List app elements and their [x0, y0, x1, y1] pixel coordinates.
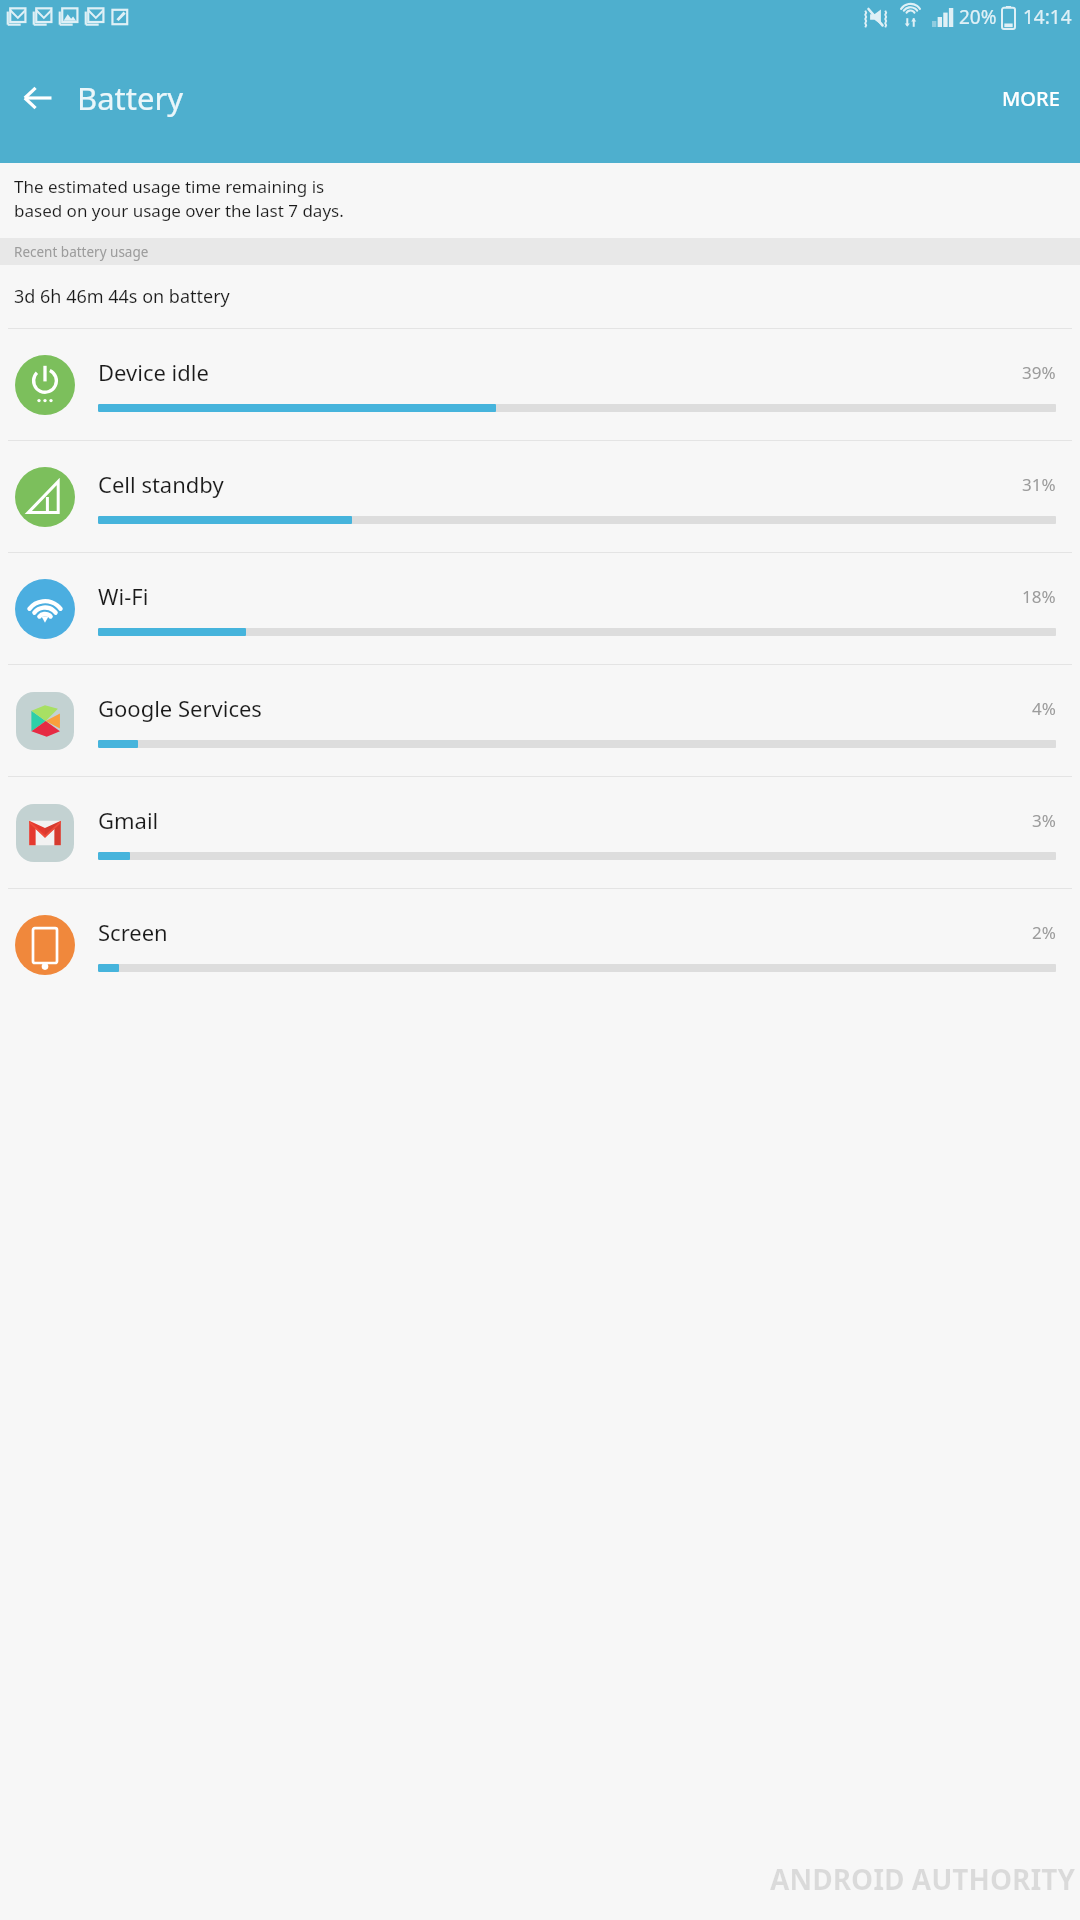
- button[interactable]: Gmail: [0, 777, 1080, 888]
- staticText: 3d 6h 46m 44s on battery: [14, 284, 230, 309]
- staticText: Device idle: [98, 357, 1022, 387]
- button[interactable]: Screen: [0, 889, 1080, 1000]
- staticText: Gmail: [98, 805, 1032, 835]
- staticText: 39%: [1022, 361, 1056, 384]
- staticText: Wi-Fi: [98, 581, 1022, 611]
- staticText: 20%: [959, 4, 997, 30]
- staticText: 2%: [1032, 921, 1056, 944]
- staticText: Cell standby: [98, 469, 1022, 499]
- staticText: 18%: [1022, 585, 1056, 608]
- staticText: ANDROID AUTHORITY: [770, 1860, 1076, 1898]
- staticText: Recent battery usage: [14, 243, 149, 261]
- button[interactable]: Back: [13, 73, 63, 123]
- staticText: 14:14: [1023, 4, 1072, 30]
- staticText: 3%: [1032, 809, 1056, 832]
- button[interactable]: MORE: [988, 73, 1074, 124]
- staticText: Screen: [98, 917, 1032, 947]
- staticText: 31%: [1022, 473, 1056, 496]
- staticText: Battery: [77, 77, 184, 119]
- button[interactable]: Wi-Fi: [0, 553, 1080, 664]
- staticText: Google Services: [98, 693, 1032, 723]
- staticText: 4%: [1032, 697, 1056, 720]
- staticText: MORE: [1002, 85, 1060, 112]
- button[interactable]: Device idle: [0, 329, 1080, 440]
- button[interactable]: Cell standby: [0, 441, 1080, 552]
- button[interactable]: Google Services: [0, 665, 1080, 776]
- staticText: The estimated usage time remaining is ba…: [14, 175, 344, 222]
